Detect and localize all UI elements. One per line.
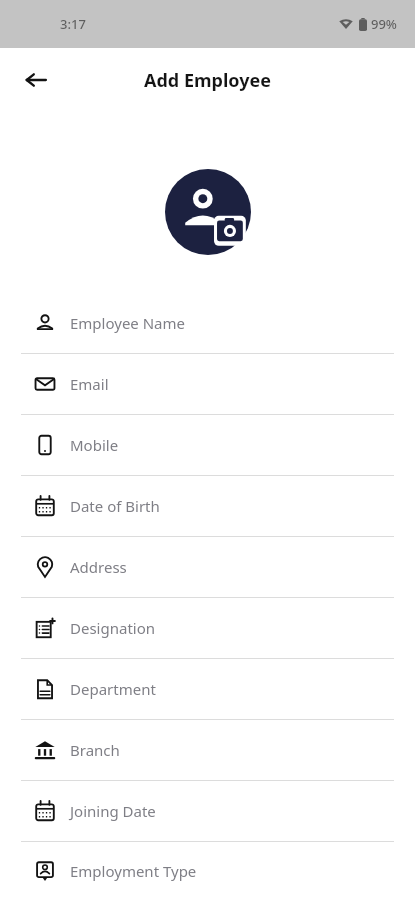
staticText: Address — [70, 557, 127, 577]
button[interactable]: Change photo — [165, 169, 251, 255]
staticText: Employee Name — [70, 313, 186, 333]
staticText: 99% — [371, 15, 397, 33]
staticText: Branch — [70, 740, 120, 760]
button[interactable]: Date of Birth — [0, 476, 415, 536]
staticText: 3:17 — [60, 15, 86, 33]
staticText: Employment Type — [70, 861, 197, 881]
button[interactable]: Mobile — [0, 415, 415, 475]
staticText: Department — [70, 679, 156, 699]
staticText: Email — [70, 374, 109, 394]
button[interactable]: Joining Date — [0, 781, 415, 841]
button[interactable]: Employee Name — [0, 293, 415, 353]
button[interactable]: Department — [0, 659, 415, 719]
button[interactable]: Employment Type — [0, 842, 415, 900]
staticText: Date of Birth — [70, 496, 160, 516]
staticText: Joining Date — [70, 801, 156, 821]
button[interactable]: Email — [0, 354, 415, 414]
button[interactable]: Designation — [0, 598, 415, 658]
staticText: Add Employee — [0, 68, 415, 93]
button[interactable]: Address — [0, 537, 415, 597]
button[interactable]: Branch — [0, 720, 415, 780]
button[interactable]: Back — [14, 58, 58, 102]
staticText: Mobile — [70, 435, 119, 455]
staticText: Designation — [70, 618, 156, 638]
